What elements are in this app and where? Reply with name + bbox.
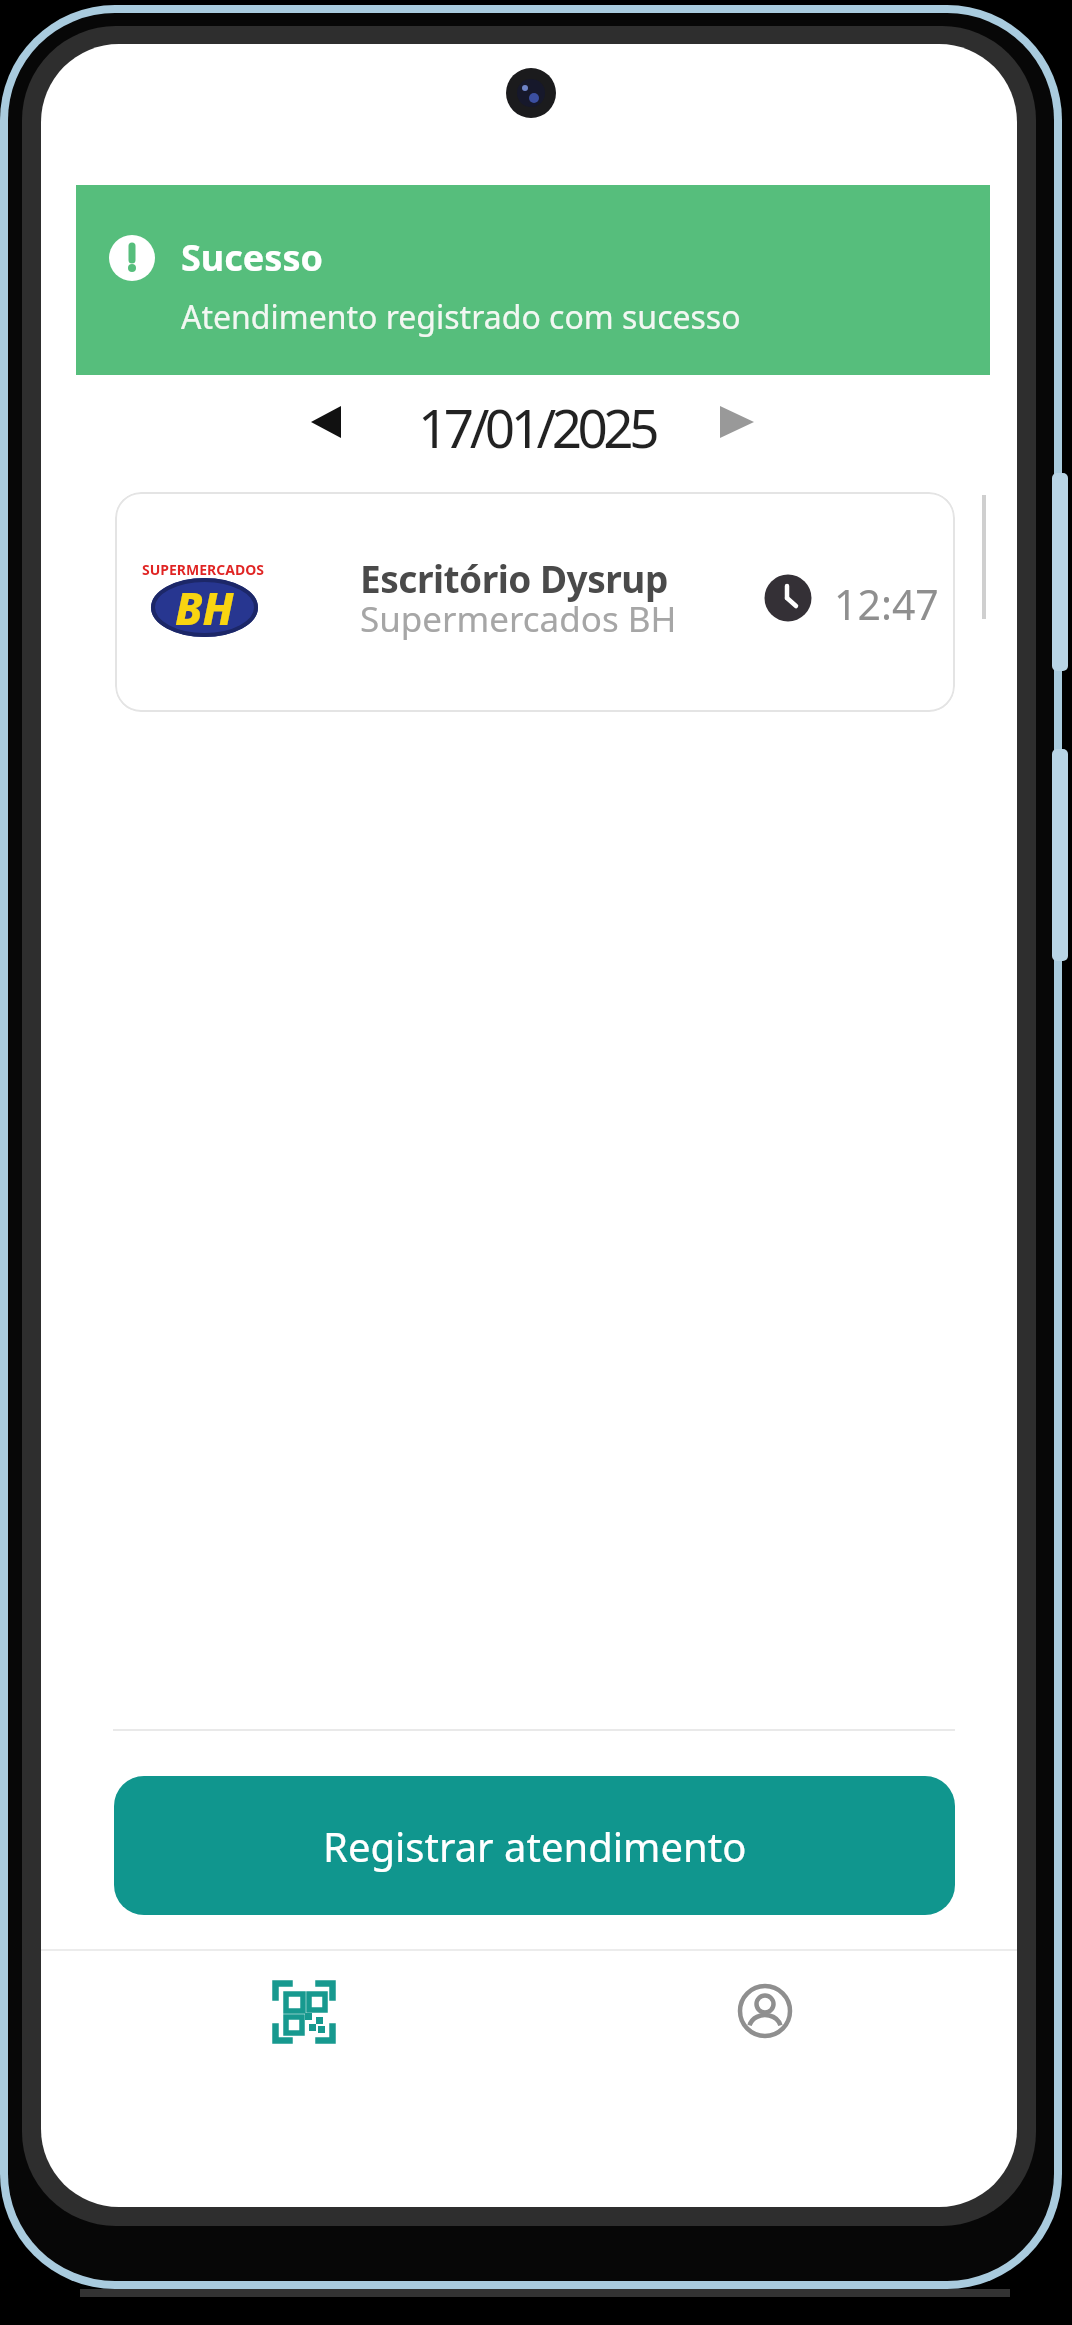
staticText: Sucesso xyxy=(181,233,323,282)
button[interactable] xyxy=(724,1970,806,2052)
staticText: 12:47 xyxy=(834,576,939,632)
staticText: 17/01/2025 xyxy=(418,391,655,463)
staticText: SUPERMERCADOS xyxy=(142,560,264,579)
button[interactable]: Registrar atendimento xyxy=(114,1776,955,1915)
button[interactable]: Sucesso xyxy=(76,185,990,375)
button[interactable] xyxy=(720,406,756,438)
button[interactable] xyxy=(263,1971,345,2053)
staticText: BH xyxy=(175,578,234,637)
staticText: Atendimento registrado com sucesso xyxy=(181,295,741,339)
button[interactable] xyxy=(311,406,341,438)
staticText: Supermercados BH xyxy=(360,595,677,643)
button[interactable]: SUPERMERCADOS xyxy=(115,492,955,712)
staticText: Registrar atendimento xyxy=(323,1819,747,1873)
staticText: Escritório Dysrup xyxy=(360,553,668,603)
